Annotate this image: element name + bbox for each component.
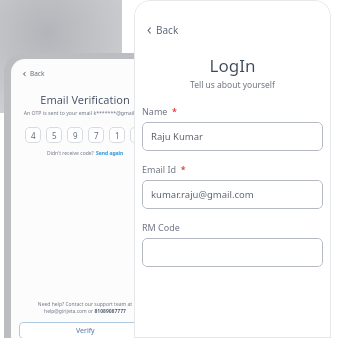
staticText: RM Code xyxy=(142,221,180,233)
button[interactable]: 7 xyxy=(88,127,104,143)
staticText: Email Id * xyxy=(142,163,186,175)
staticText: Verify xyxy=(76,326,95,336)
staticText: Email Verification xyxy=(19,92,151,107)
staticText: help@girijeta.com or 81089087777 xyxy=(19,308,151,315)
staticText: Back xyxy=(156,23,179,37)
staticText: kumar.raju@gmail.com xyxy=(151,188,254,201)
staticText: Send again xyxy=(96,150,124,157)
other: Back xyxy=(144,26,153,35)
staticText: Tell us about yourself xyxy=(142,79,323,91)
staticText: Name * xyxy=(142,105,177,117)
staticText: An OTP is sent to your email k*******@gm… xyxy=(19,109,151,116)
button[interactable]: 9 xyxy=(67,127,83,143)
button[interactable]: 1 xyxy=(109,127,125,143)
button[interactable]: 0 xyxy=(130,127,146,143)
staticText: Raju Kumar xyxy=(151,130,203,143)
staticText: Didn't receive code? xyxy=(47,150,96,157)
other: Back xyxy=(21,71,27,77)
staticText: Need help? Contact our support team at xyxy=(19,301,151,308)
staticText: 7 xyxy=(94,130,99,141)
button[interactable]: kumar.raju@gmail.com xyxy=(142,180,323,209)
button[interactable]: Back xyxy=(142,21,181,39)
staticText: Back xyxy=(30,69,45,78)
staticText: 5 xyxy=(52,130,57,141)
staticText: LogIn xyxy=(142,54,323,77)
button[interactable]: Raju Kumar xyxy=(142,122,323,151)
button[interactable]: 4 xyxy=(25,127,41,143)
button[interactable] xyxy=(142,238,323,267)
staticText: 1 xyxy=(115,130,120,141)
button[interactable]: Verify xyxy=(19,322,151,338)
button[interactable]: Back xyxy=(19,67,47,80)
staticText: 4 xyxy=(31,130,36,141)
button[interactable]: Didn't receive code? xyxy=(47,150,124,157)
staticText: 9 xyxy=(73,130,78,141)
button[interactable]: 5 xyxy=(46,127,62,143)
